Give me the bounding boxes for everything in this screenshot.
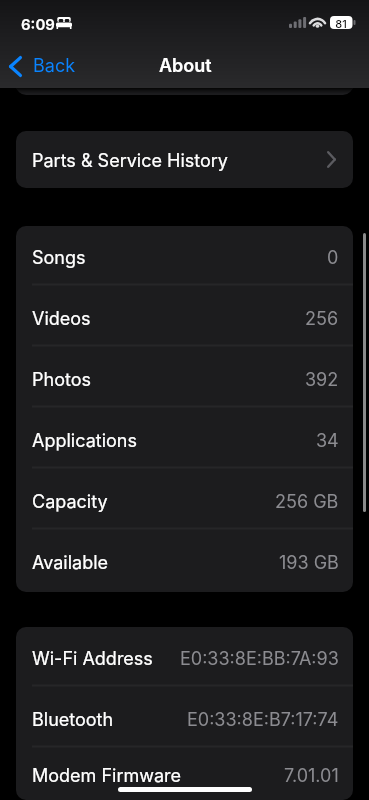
button[interactable]: Parts & Service History <box>16 131 353 188</box>
button[interactable]: Modem Firmware <box>16 749 353 800</box>
staticText: 256 <box>305 308 339 330</box>
button[interactable]: Wi-Fi Address <box>16 627 353 688</box>
staticText: Modem Firmware <box>32 765 182 787</box>
staticText: Photos <box>32 369 91 391</box>
staticText: Parts & Service History <box>32 150 228 172</box>
button[interactable]: Applications <box>16 409 353 470</box>
button[interactable]: Videos <box>16 287 353 348</box>
staticText: Capacity <box>32 491 108 513</box>
staticText: 7.01.01 <box>284 765 339 787</box>
button[interactable]: Bluetooth <box>16 688 353 749</box>
staticText: 81 <box>335 17 347 30</box>
staticText: Videos <box>32 308 91 330</box>
button[interactable]: Back <box>0 44 86 88</box>
button[interactable]: Available <box>16 531 353 592</box>
staticText: E0:33:8E:B7:17:74 <box>187 709 339 731</box>
staticText: E0:33:8E:BB:7A:93 <box>180 648 339 670</box>
staticText: 6:09 <box>21 15 55 33</box>
staticText: Back <box>33 55 76 77</box>
button[interactable]: Photos <box>16 348 353 409</box>
staticText: 193 GB <box>279 552 339 574</box>
staticText: Applications <box>32 430 137 452</box>
staticText: 0 <box>327 247 339 269</box>
staticText: Available <box>32 552 109 574</box>
staticText: Bluetooth <box>32 709 114 731</box>
staticText: 34 <box>316 430 339 452</box>
button[interactable]: Songs <box>16 226 353 287</box>
staticText: 256 GB <box>275 491 339 513</box>
staticText: Wi-Fi Address <box>32 648 153 670</box>
button[interactable]: Capacity <box>16 470 353 531</box>
staticText: About <box>159 55 212 77</box>
staticText: 392 <box>305 369 339 391</box>
staticText: Songs <box>32 247 86 269</box>
